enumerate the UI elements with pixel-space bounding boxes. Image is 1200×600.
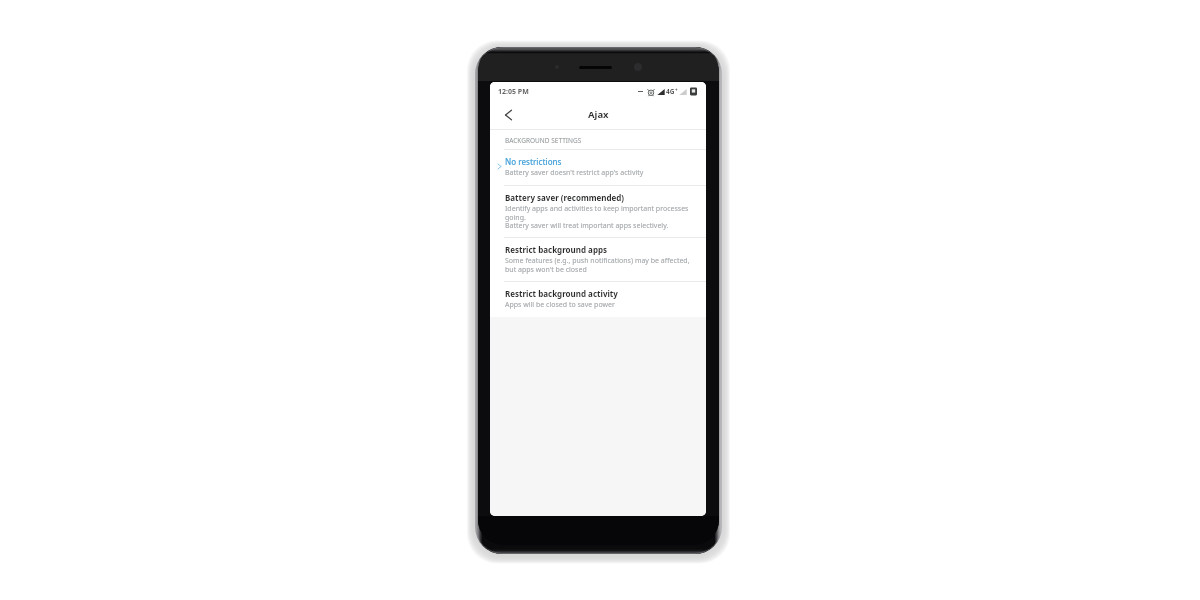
button[interactable]: Battery saver (recommended) <box>490 186 706 237</box>
staticText: Restrict background activity <box>505 288 618 299</box>
staticText: Apps will be closed to save power <box>505 300 615 310</box>
button[interactable]: Restrict background apps <box>490 238 706 281</box>
staticText: 12:05 PM <box>498 87 529 97</box>
staticText: Some features (e.g., push notifications)… <box>505 256 690 274</box>
staticText: Ajax <box>588 108 609 121</box>
staticText: Battery saver (recommended) <box>505 192 625 203</box>
staticText: + <box>675 87 678 93</box>
staticText: No restrictions <box>505 156 562 167</box>
staticText: Battery saver doesn't restrict app's act… <box>505 168 644 178</box>
staticText: 4G <box>666 87 675 96</box>
button[interactable]: Restrict background activity <box>490 282 706 317</box>
staticText: Identify apps and activities to keep imp… <box>505 204 689 230</box>
button[interactable]: Back <box>498 105 518 125</box>
staticText: BACKGROUND SETTINGS <box>505 136 582 145</box>
staticText: Restrict background apps <box>505 244 608 255</box>
button[interactable]: No restrictions <box>490 150 706 185</box>
